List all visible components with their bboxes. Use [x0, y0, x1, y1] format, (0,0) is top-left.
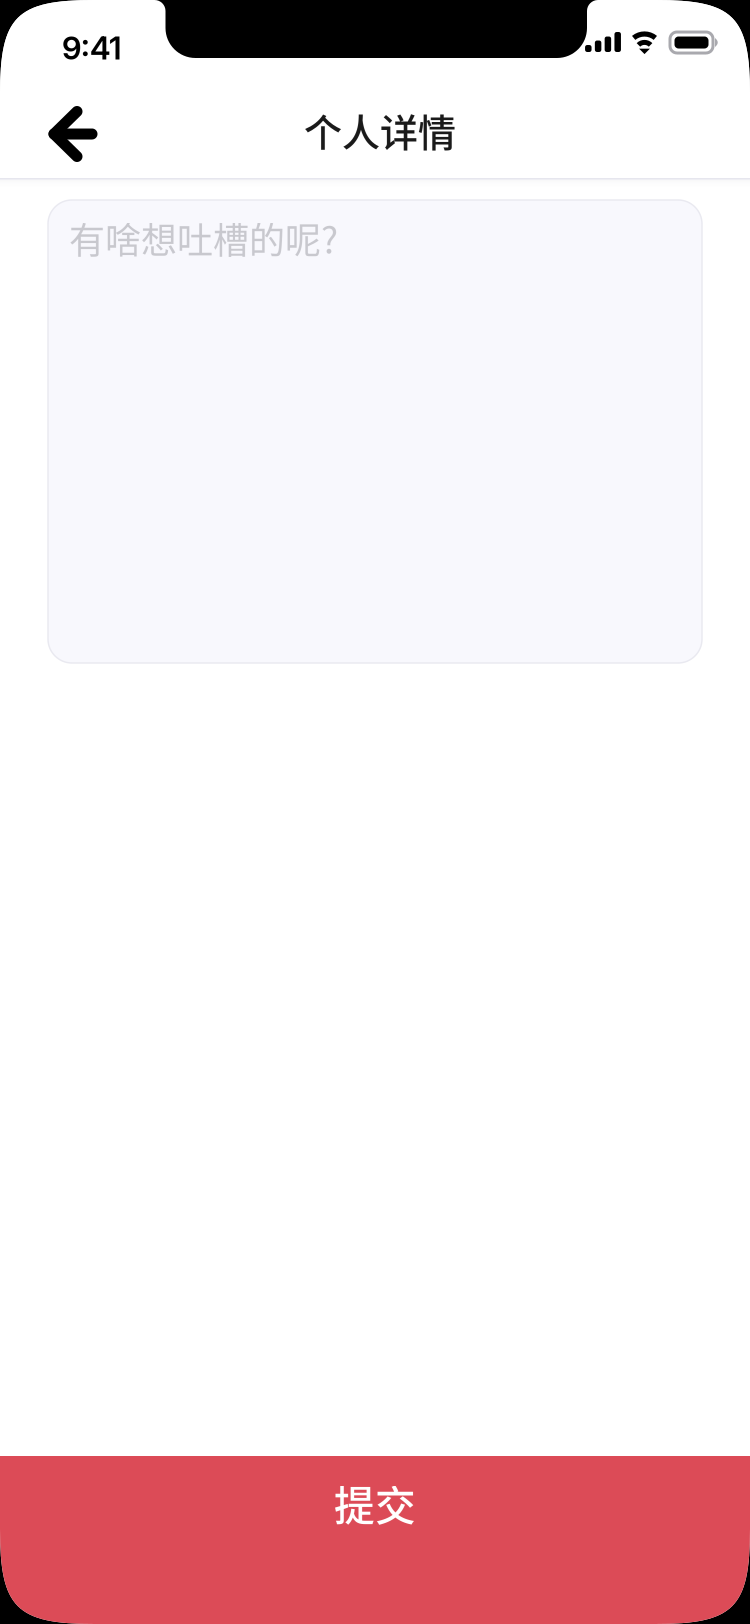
- staticText: 有啥想吐槽的呢?: [69, 212, 338, 264]
- button[interactable]: 提交: [0, 1456, 750, 1624]
- staticText: 个人详情: [304, 102, 456, 157]
- staticText: 提交: [334, 1474, 416, 1532]
- staticText: 9:41: [62, 29, 122, 67]
- button[interactable]: Back: [3, 90, 143, 178]
